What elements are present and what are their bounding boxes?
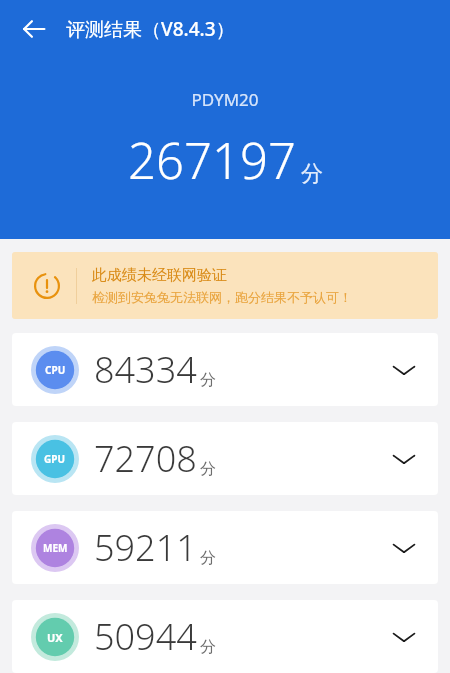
button[interactable]: GPU [12,422,438,495]
staticText: 分 [301,160,323,188]
staticText: UX [47,630,63,645]
staticText: 分 [200,370,216,390]
other: Expand UX details [380,613,428,661]
other: Expand GPU details [380,435,428,483]
button[interactable]: 此成绩未经联网验证 [12,252,438,319]
staticText: 分 [200,459,216,479]
staticText: 50944 [94,612,197,661]
staticText: 84334 [94,345,197,394]
button[interactable]: UX [12,600,438,673]
staticText: 267197 [128,127,296,194]
staticText: CPU [45,363,66,377]
staticText: 评测结果（V8.4.3） [66,16,235,42]
other: Expand CPU details [380,346,428,394]
staticText: 此成绩未经联网验证 [92,266,227,285]
button[interactable]: Back [10,5,58,53]
other: Expand MEM details [380,524,428,572]
staticText: 检测到安兔兔无法联网，跑分结果不予认可！ [92,289,352,305]
staticText: 分 [200,637,216,657]
staticText: 59211 [94,523,197,572]
staticText: GPU [44,452,66,466]
staticText: PDYM20 [191,88,259,111]
staticText: MEM [43,541,68,555]
button[interactable]: CPU [12,333,438,406]
staticText: 72708 [94,434,197,483]
button[interactable]: MEM [12,511,438,584]
staticText: 分 [200,548,216,568]
